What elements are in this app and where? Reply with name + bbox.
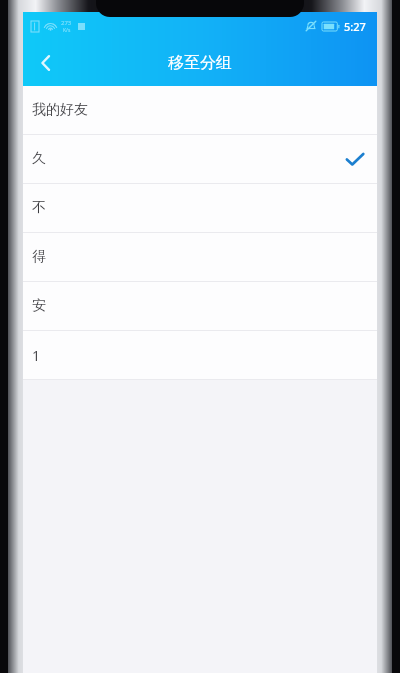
staticText: K/s	[63, 27, 71, 34]
staticText: 久	[32, 150, 46, 168]
button[interactable]: 我的好友	[23, 86, 377, 134]
button[interactable]: 安	[23, 282, 377, 330]
staticText: 我的好友	[32, 101, 88, 119]
button[interactable]: Back	[23, 40, 69, 86]
button[interactable]: 久	[23, 135, 377, 183]
staticText: 不	[32, 199, 46, 217]
staticText: 5:27	[344, 19, 366, 34]
staticText: 1	[32, 346, 41, 365]
staticText: 安	[32, 297, 46, 315]
staticText: 移至分组	[168, 53, 232, 73]
staticText: 273	[61, 19, 72, 27]
staticText: 得	[32, 248, 46, 266]
button[interactable]: 得	[23, 233, 377, 281]
button[interactable]: 不	[23, 184, 377, 232]
button[interactable]: 1	[23, 331, 377, 379]
